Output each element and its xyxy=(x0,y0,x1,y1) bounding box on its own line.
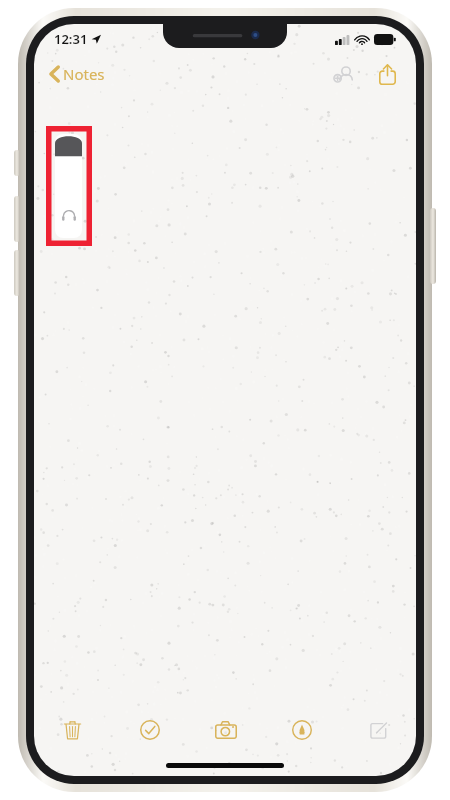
button[interactable]: New Note xyxy=(340,706,416,754)
button[interactable]: Add People xyxy=(328,59,358,89)
button[interactable]: Notes xyxy=(46,60,109,88)
staticText: 12:31 xyxy=(54,30,88,48)
button[interactable]: Checklist xyxy=(111,706,188,754)
button[interactable]: Delete xyxy=(34,706,111,754)
button[interactable]: Share xyxy=(372,59,402,89)
button[interactable]: Audio recording attachment xyxy=(55,134,82,238)
button[interactable]: Markup xyxy=(264,706,340,754)
staticText: Notes xyxy=(63,64,105,84)
button[interactable]: Camera xyxy=(188,706,264,754)
